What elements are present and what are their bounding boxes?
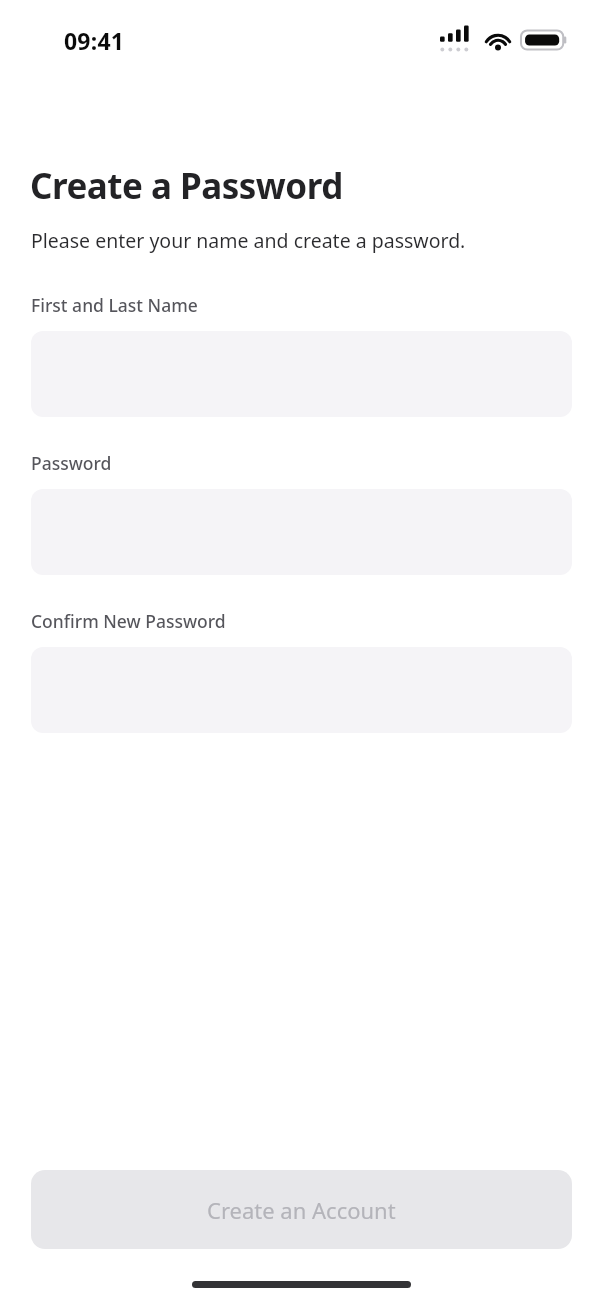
staticText: Create an Account (207, 1195, 396, 1225)
staticText: Confirm New Password (31, 609, 226, 633)
staticText: 09:41 (64, 25, 125, 56)
staticText: First and Last Name (31, 293, 198, 317)
staticText: Password (31, 451, 112, 475)
staticText: Create a Password (30, 162, 343, 210)
button[interactable]: Create an Account (31, 1170, 572, 1249)
staticText: Please enter your name and create a pass… (31, 227, 466, 254)
